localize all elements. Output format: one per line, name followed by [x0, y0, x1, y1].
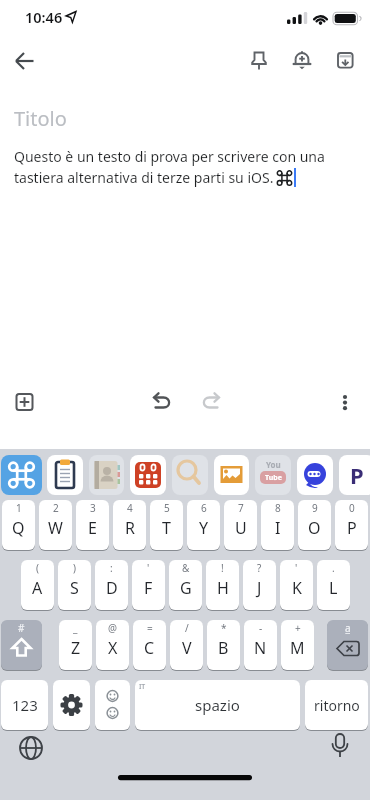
staticText: Tube [265, 473, 282, 483]
staticText: G [180, 577, 192, 599]
button[interactable]: 0 [335, 500, 368, 550]
staticText: _ [73, 621, 78, 635]
button[interactable] [195, 385, 229, 419]
button[interactable]: - [244, 620, 277, 670]
staticText: 6 [201, 501, 207, 515]
button[interactable] [8, 385, 42, 419]
staticText: 3 [90, 501, 96, 515]
staticText: 7 [238, 501, 244, 515]
button[interactable]: a̲ [327, 620, 368, 670]
button[interactable]: ' [280, 560, 313, 610]
button[interactable] [14, 731, 48, 765]
staticText: H [217, 577, 229, 599]
button[interactable]: _ [59, 620, 92, 670]
staticText: B [218, 637, 229, 659]
button[interactable] [95, 680, 130, 730]
button[interactable]: 9 [298, 500, 331, 550]
staticText: + [295, 621, 301, 635]
button[interactable] [47, 455, 83, 495]
staticText: * [221, 621, 227, 635]
staticText: ' [147, 561, 150, 575]
button[interactable]: & [169, 560, 202, 610]
staticText: # [18, 621, 25, 635]
button[interactable]: = [133, 620, 166, 670]
staticText: ( [36, 561, 39, 575]
staticText: X [108, 637, 118, 659]
button[interactable] [328, 385, 362, 419]
staticText: ) [73, 561, 76, 575]
button[interactable]: : [95, 560, 128, 610]
staticText: 1 [16, 501, 22, 515]
button[interactable]: ' [132, 560, 165, 610]
staticText: Q [12, 517, 25, 539]
staticText: / [185, 621, 189, 635]
staticText: 10:46 [25, 7, 63, 27]
button[interactable] [89, 455, 124, 495]
button[interactable]: ! [206, 560, 239, 610]
staticText: J [257, 577, 262, 599]
staticText: K [292, 577, 302, 599]
staticText: 4 [127, 501, 133, 515]
button[interactable]: 3 [76, 500, 109, 550]
staticText: M [290, 637, 305, 659]
staticText: tastiera alternativa di terze parti su i… [14, 168, 278, 187]
staticText: C [144, 637, 155, 659]
staticText: : [110, 561, 113, 575]
button[interactable]: 123 [1, 680, 48, 730]
staticText: = [147, 621, 153, 635]
button[interactable]: 1 [2, 500, 35, 550]
staticText: ? [257, 561, 262, 575]
button[interactable]: . [317, 560, 350, 610]
button[interactable]: 6 [187, 500, 220, 550]
button[interactable]: * [207, 620, 240, 670]
button[interactable] [172, 455, 208, 495]
button[interactable]: P [339, 455, 370, 495]
button[interactable] [53, 680, 90, 730]
button[interactable]: ritorno [305, 680, 368, 730]
button[interactable]: # [1, 620, 42, 670]
staticText: I [275, 517, 281, 539]
button[interactable] [1, 455, 42, 495]
button[interactable] [214, 455, 249, 495]
staticText: W [48, 517, 63, 539]
staticText: @ [108, 621, 117, 635]
button[interactable] [144, 385, 178, 419]
staticText: & [182, 561, 190, 575]
staticText: T [162, 517, 171, 539]
button[interactable] [323, 731, 357, 765]
staticText: Questo è un testo di prova per scrivere … [14, 147, 325, 166]
button[interactable]: @ [96, 620, 129, 670]
staticText: Y [199, 517, 209, 539]
staticText: 123 [12, 695, 38, 715]
staticText: You [266, 459, 281, 470]
button[interactable]: ? [243, 560, 276, 610]
button[interactable] [130, 455, 166, 495]
button[interactable]: You [255, 455, 291, 495]
staticText: ! [221, 561, 224, 575]
button[interactable] [8, 45, 42, 79]
staticText: R [125, 517, 135, 539]
button[interactable]: 5 [150, 500, 183, 550]
button[interactable]: 4 [113, 500, 146, 550]
staticText: F [144, 577, 153, 599]
staticText: S [70, 577, 79, 599]
button[interactable]: + [281, 620, 314, 670]
staticText: a̲ [345, 621, 351, 635]
staticText: E [88, 517, 97, 539]
button[interactable] [328, 44, 362, 78]
button[interactable]: 7 [224, 500, 257, 550]
staticText: U [235, 517, 247, 539]
button[interactable]: 8 [261, 500, 294, 550]
staticText: Titolo [14, 105, 67, 132]
button[interactable]: ( [21, 560, 54, 610]
button[interactable]: IT [135, 680, 300, 730]
staticText: 2 [53, 501, 59, 515]
button[interactable] [242, 44, 276, 78]
button[interactable]: / [170, 620, 203, 670]
button[interactable] [285, 44, 319, 78]
button[interactable] [297, 455, 333, 495]
button[interactable]: 2 [39, 500, 72, 550]
button[interactable]: ) [58, 560, 91, 610]
staticText: . [332, 561, 335, 575]
staticText: 9 [312, 501, 318, 515]
